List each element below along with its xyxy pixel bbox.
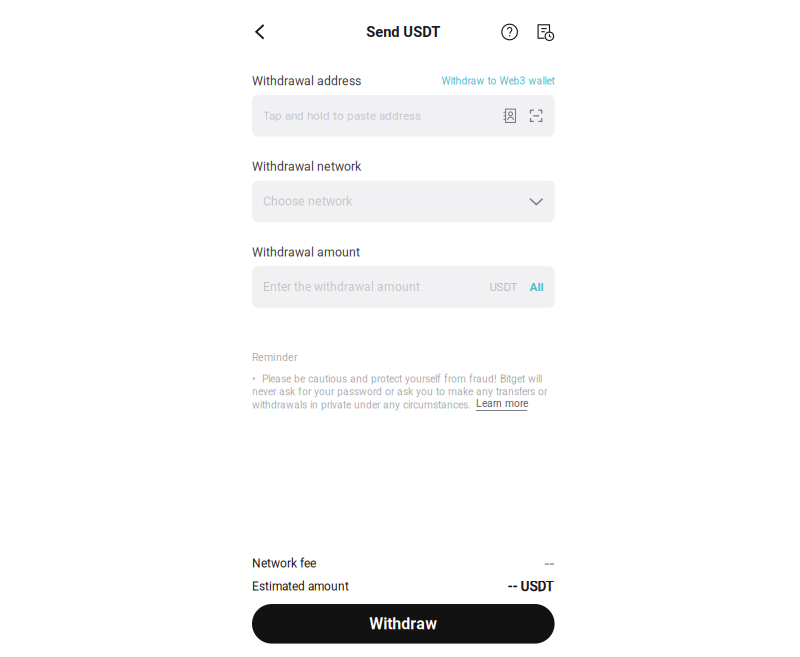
- staticText: --: [545, 553, 555, 574]
- button[interactable]: Address book: [502, 106, 519, 126]
- staticText: Send USDT: [366, 23, 440, 41]
- staticText: Withdrawal network: [252, 159, 361, 174]
- staticText: Enter the withdrawal amount: [263, 280, 420, 294]
- staticText: Reminder: [252, 351, 298, 363]
- button[interactable]: Withdraw: [252, 604, 555, 644]
- staticText: Withdraw: [369, 614, 437, 633]
- staticText: USDT: [490, 280, 518, 294]
- staticText: Tap and hold to paste address: [263, 109, 421, 123]
- staticText: Estimated amount: [252, 579, 349, 593]
- staticText: never ask for your password or ask you t…: [252, 386, 547, 398]
- button[interactable]: Help: [500, 16, 520, 48]
- button[interactable]: Choose network: [252, 181, 555, 222]
- staticText: -- USDT: [508, 578, 555, 595]
- staticText: Withdraw to Web3 wallet: [442, 75, 555, 87]
- button[interactable]: Transaction records: [537, 16, 554, 48]
- button[interactable]: Withdraw to Web3 wallet: [442, 75, 555, 87]
- staticText: Please be cautious and protect yourself …: [262, 373, 542, 385]
- button[interactable]: Learn more: [476, 397, 528, 411]
- button[interactable]: All: [530, 280, 544, 294]
- button[interactable]: Scan QR code: [529, 106, 544, 126]
- staticText: Learn more: [476, 397, 528, 409]
- staticText: •: [252, 373, 256, 385]
- staticText: Choose network: [263, 194, 352, 209]
- staticText: Network fee: [252, 556, 316, 571]
- staticText: Withdrawal amount: [252, 245, 360, 259]
- staticText: All: [530, 280, 544, 294]
- staticText: withdrawals in private under any circums…: [252, 399, 471, 411]
- button[interactable]: Back: [255, 16, 275, 48]
- staticText: Withdrawal address: [252, 74, 361, 88]
